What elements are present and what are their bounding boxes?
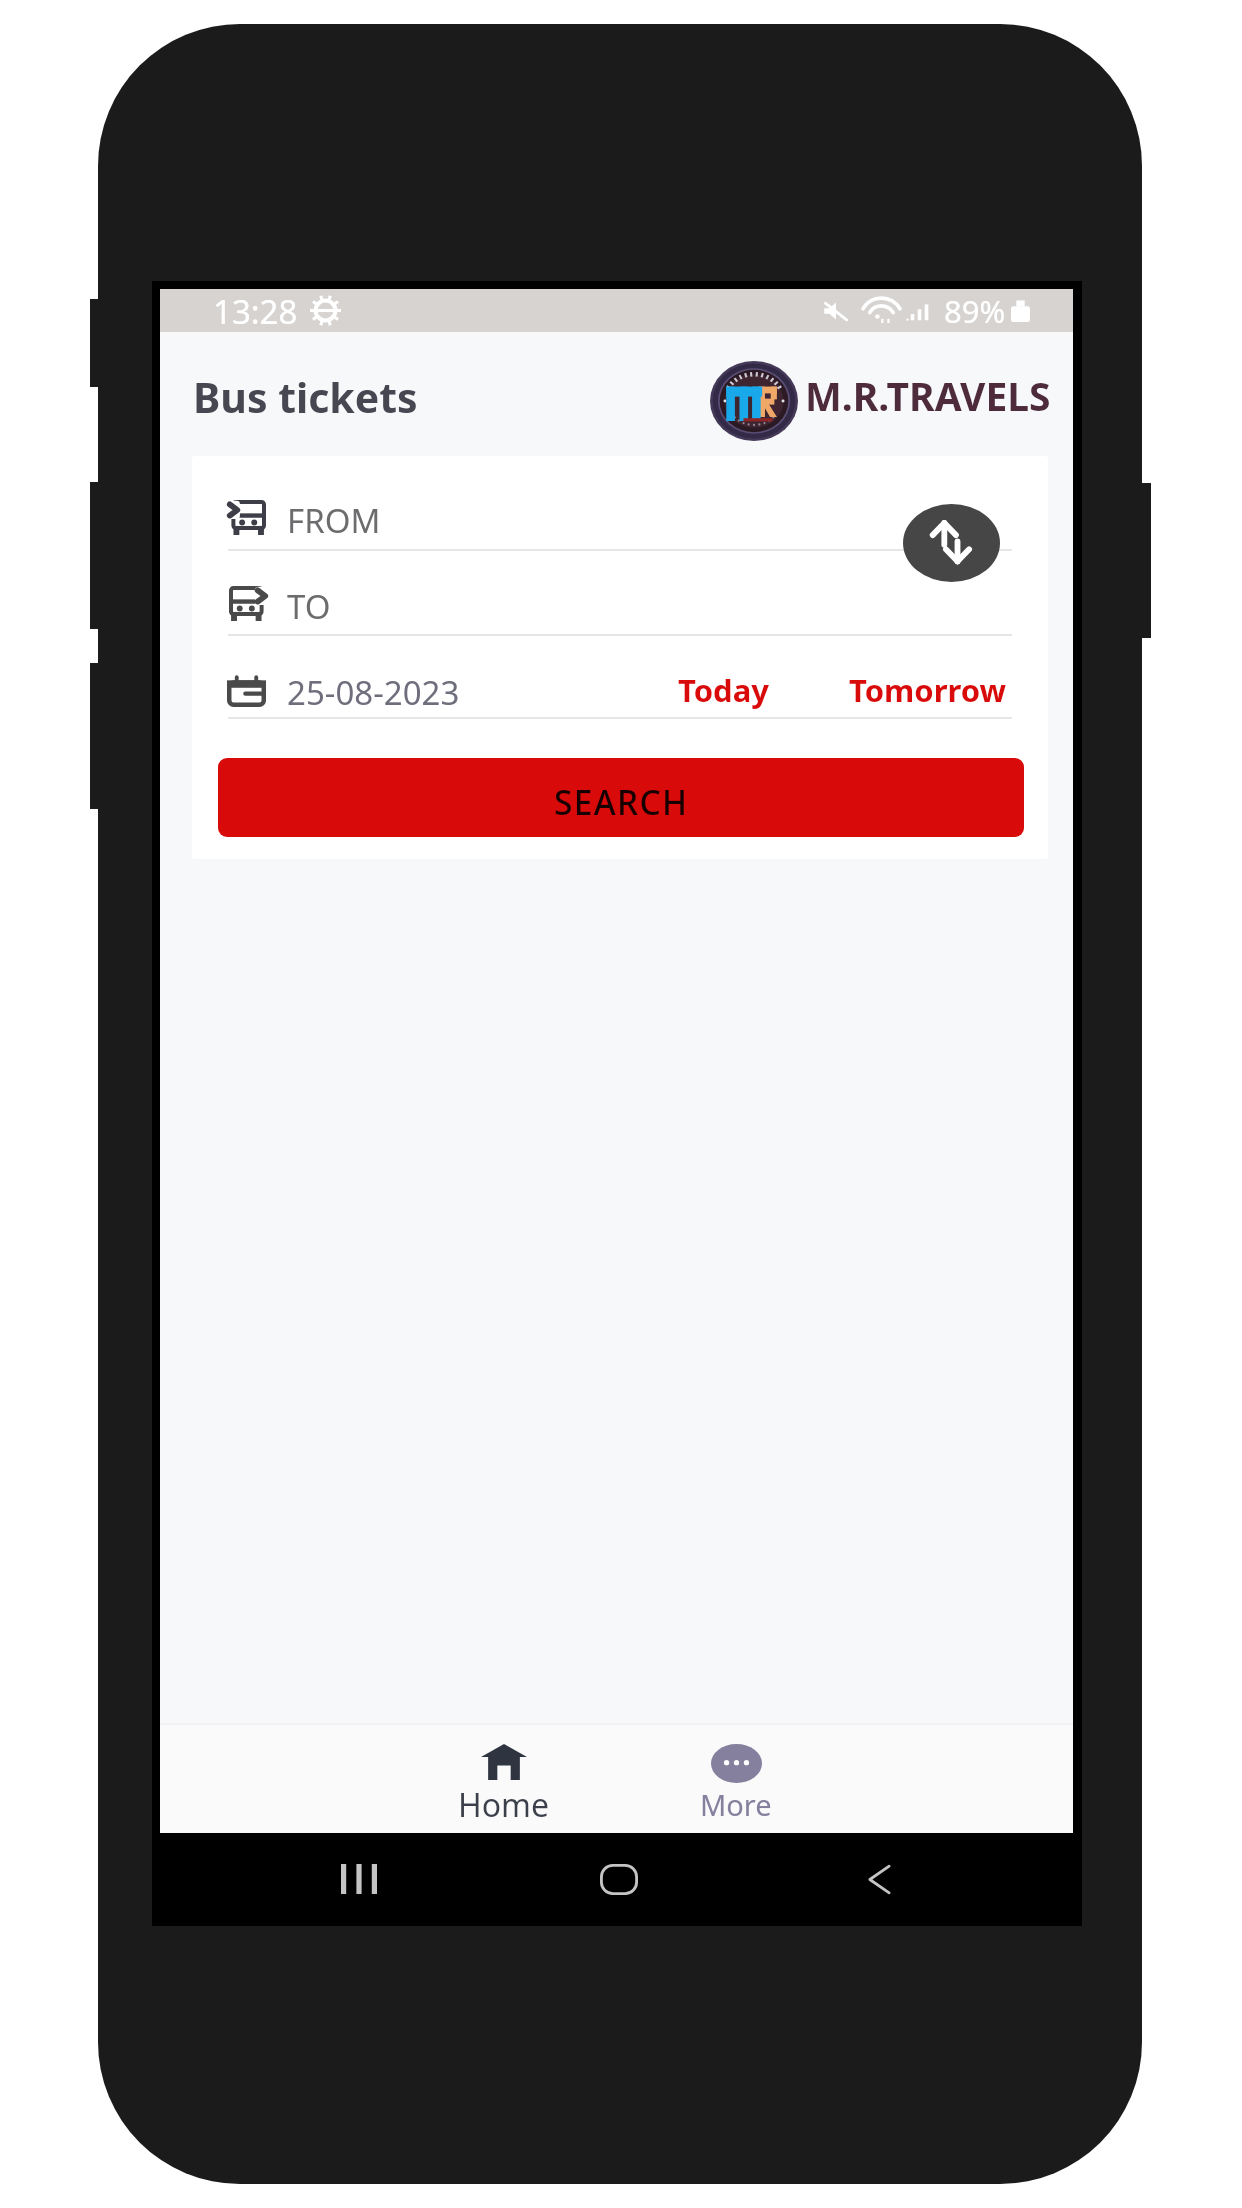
button[interactable]: FROM (192, 456, 1048, 551)
staticText: FROM (287, 498, 381, 543)
button[interactable]: Swap from and to (903, 504, 1000, 582)
staticText: M.R.TRAVELS (805, 369, 1051, 422)
staticText: TO (287, 584, 331, 629)
staticText: Today (678, 669, 769, 711)
staticText: Tomorrow (849, 669, 1007, 711)
button[interactable]: TO (192, 551, 1048, 636)
button[interactable]: More (636, 1723, 836, 1833)
button[interactable]: Home (539, 1833, 699, 1925)
button[interactable]: Recent apps (279, 1833, 439, 1925)
staticText: Bus tickets (193, 369, 418, 425)
staticText: Home (458, 1783, 550, 1827)
button[interactable]: Home (404, 1723, 604, 1833)
button[interactable]: Tomorrow (829, 636, 1024, 719)
staticText: 25-08-2023 (287, 670, 460, 715)
button[interactable]: 25-08-2023 (212, 636, 652, 719)
staticText: 13:28 (213, 289, 298, 332)
staticText: SEARCH (554, 779, 689, 825)
staticText: More (700, 1785, 772, 1824)
staticText: 89% (944, 290, 1006, 332)
button[interactable]: Back (799, 1833, 959, 1925)
button[interactable]: SEARCH (218, 758, 1024, 837)
button[interactable]: Today (658, 636, 790, 719)
